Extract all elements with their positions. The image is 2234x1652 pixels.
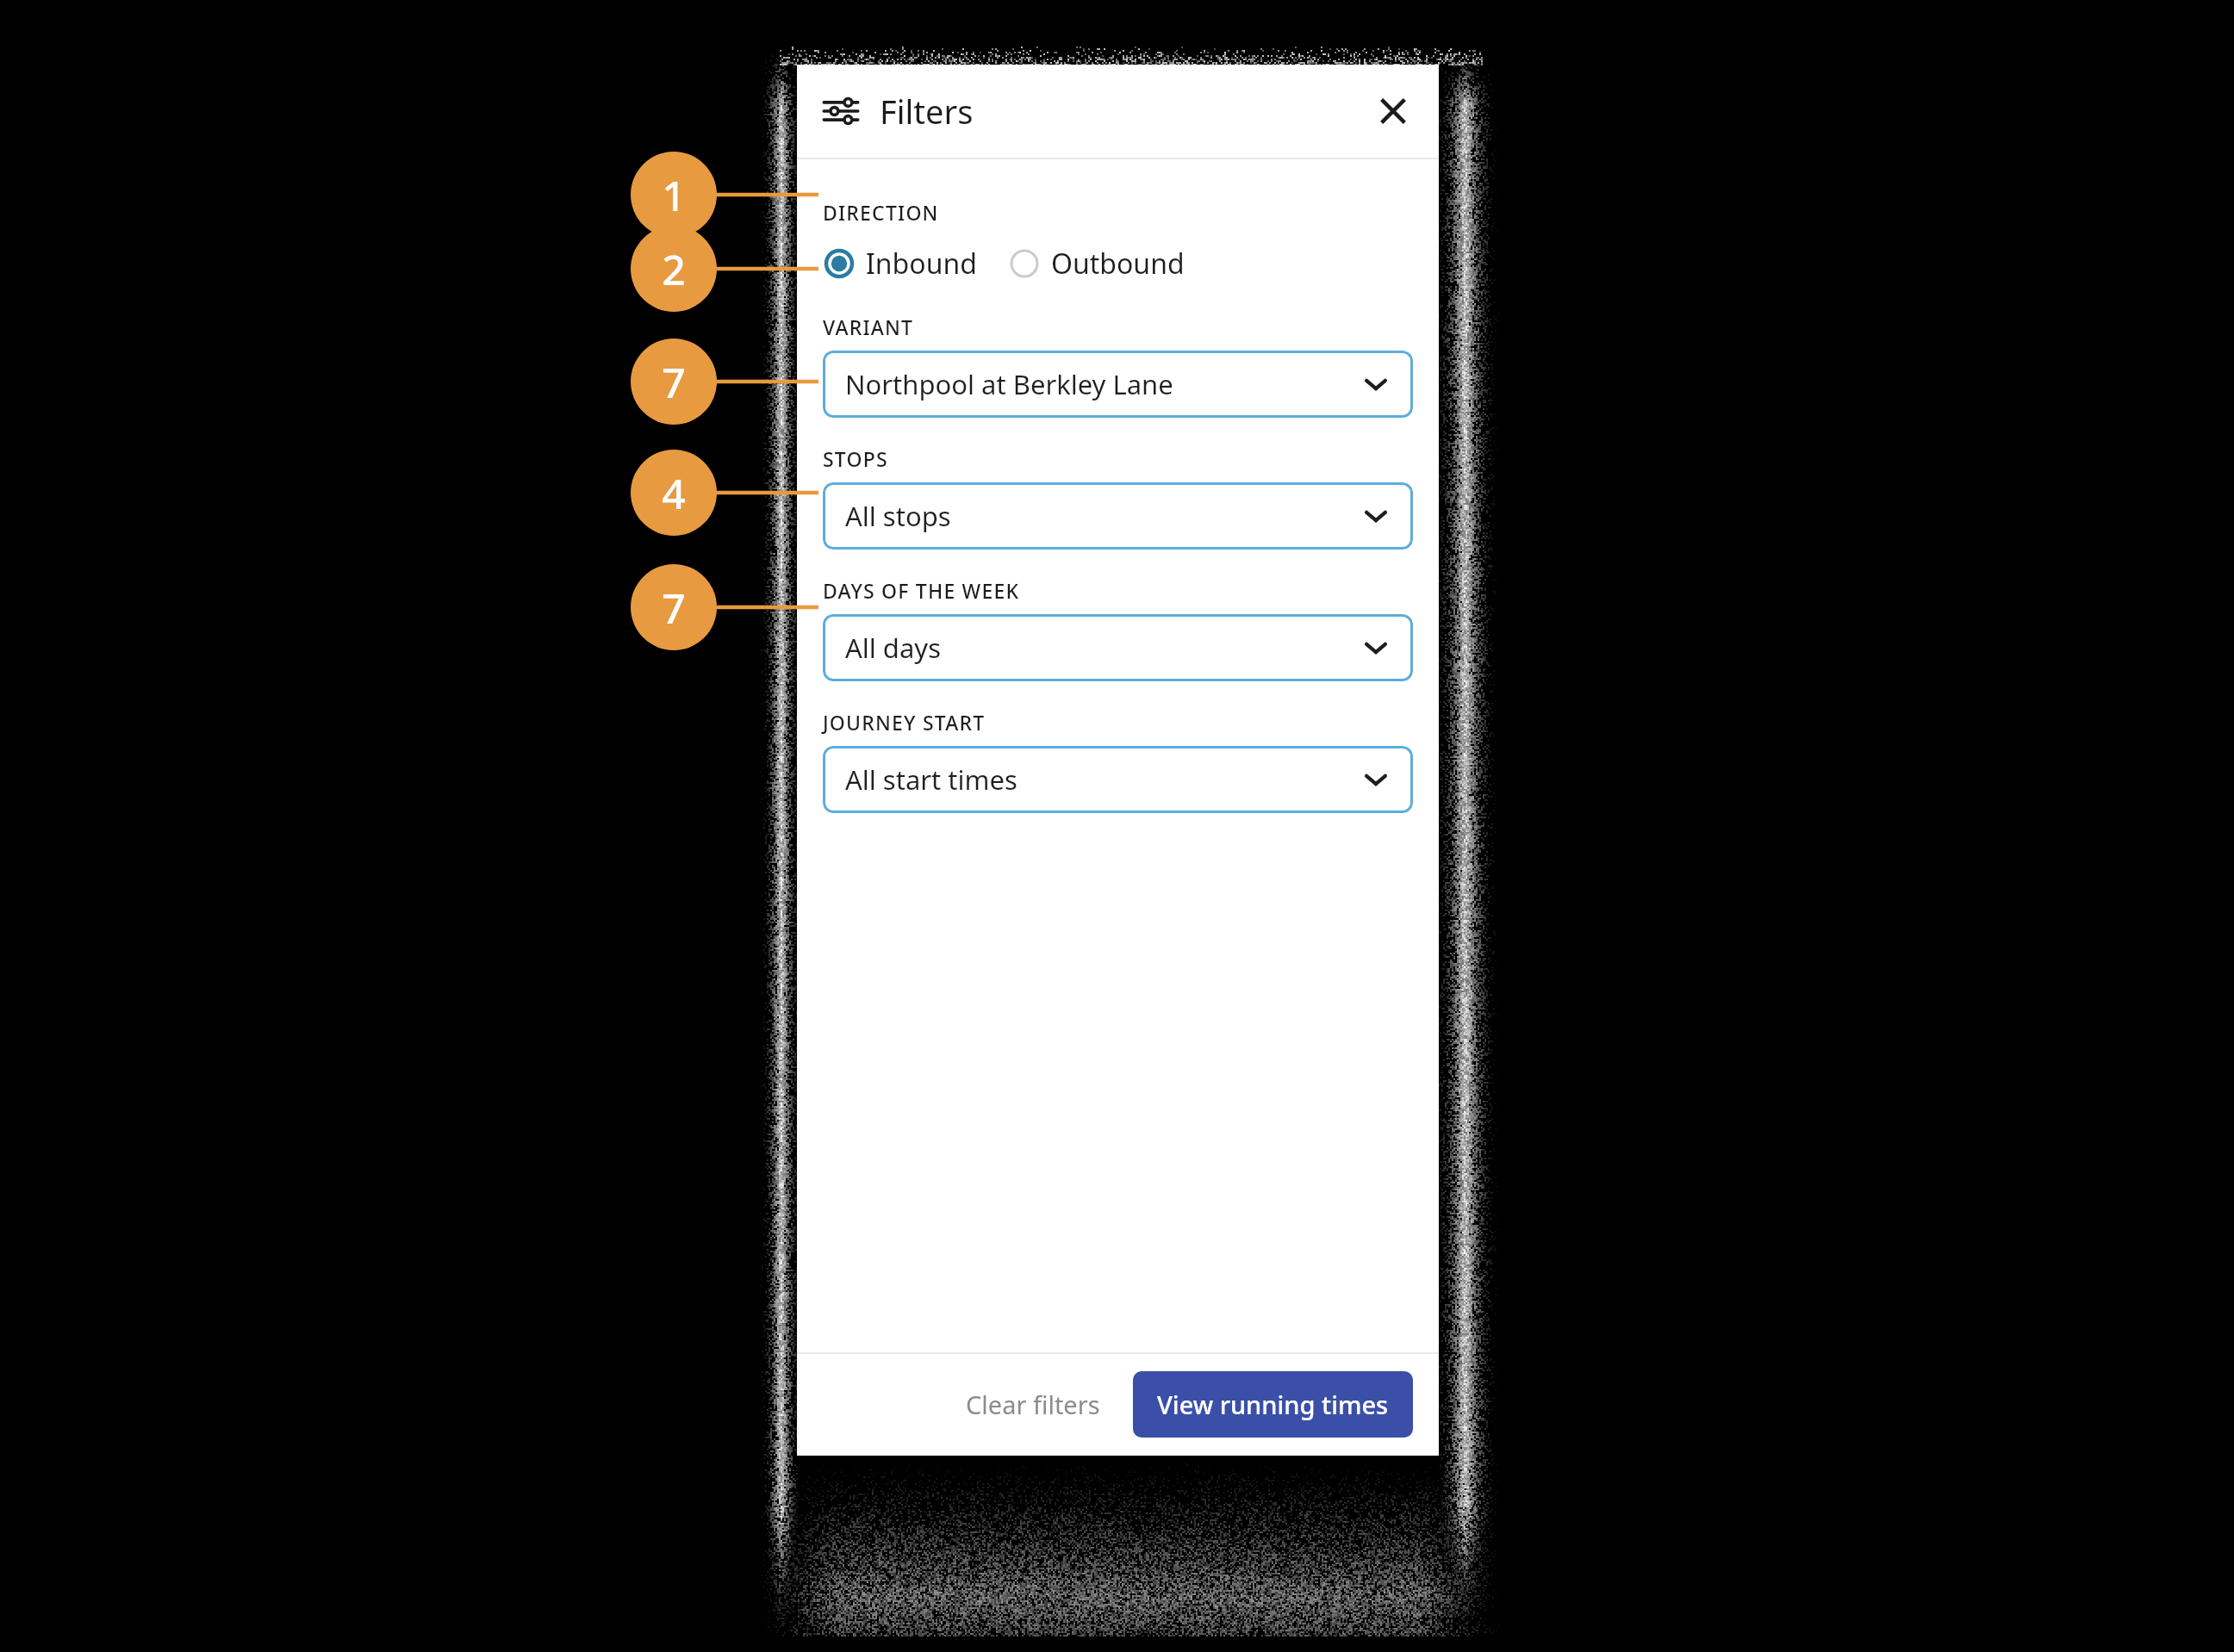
button[interactable]: 2	[631, 226, 717, 312]
button[interactable]: Inbound	[823, 238, 979, 289]
staticText: All start times	[845, 761, 1017, 798]
staticText: 2	[662, 241, 686, 297]
staticText: 4	[662, 465, 686, 521]
staticText: View running times	[1157, 1388, 1389, 1421]
staticText: 7	[662, 580, 686, 636]
staticText: Clear filters	[966, 1388, 1100, 1421]
button[interactable]: 7	[631, 564, 717, 650]
staticText: DIRECTION	[823, 199, 939, 226]
staticText: Northpool at Berkley Lane	[845, 366, 1173, 402]
staticText: All stops	[845, 498, 951, 534]
staticText: Inbound	[866, 245, 977, 283]
button[interactable]: View running times	[1133, 1371, 1413, 1438]
staticText: VARIANT	[823, 314, 914, 340]
staticText: Outbound	[1051, 245, 1185, 283]
button[interactable]: Clear filters	[952, 1374, 1114, 1435]
staticText: All days	[845, 630, 941, 666]
staticText: JOURNEY START	[823, 709, 986, 736]
staticText: DAYS OF THE WEEK	[823, 577, 1020, 604]
button[interactable]: Outbound	[1008, 238, 1186, 289]
button[interactable]: 1	[631, 152, 717, 238]
button[interactable]: All start times	[823, 746, 1413, 813]
button[interactable]: Northpool at Berkley Lane	[823, 351, 1413, 418]
button[interactable]: All stops	[823, 482, 1413, 550]
staticText: 1	[662, 167, 686, 223]
staticText: 7	[662, 354, 686, 410]
button[interactable]: Close filters	[1361, 79, 1425, 143]
button[interactable]: 4	[631, 450, 717, 536]
button[interactable]: 7	[631, 338, 717, 425]
staticText: STOPS	[823, 445, 888, 472]
button[interactable]: All days	[823, 614, 1413, 681]
staticText: Filters	[880, 89, 974, 134]
